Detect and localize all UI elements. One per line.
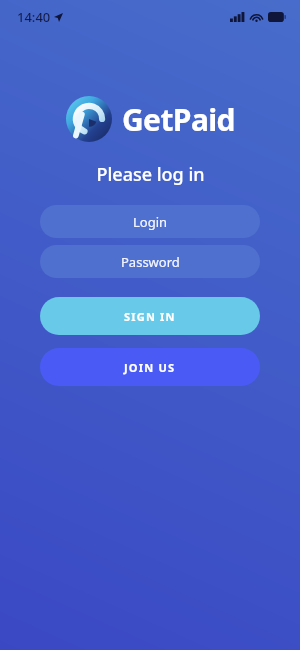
other: GetPaid logo — [66, 96, 112, 142]
button[interactable]: JOIN US — [40, 348, 260, 386]
staticText: Password — [121, 253, 180, 271]
staticText: GetPaid — [122, 99, 235, 140]
button[interactable]: SIGN IN — [40, 297, 260, 335]
staticText: Login — [133, 213, 168, 231]
staticText: 14:40 — [17, 8, 51, 26]
button[interactable]: Login — [40, 205, 260, 238]
staticText: SIGN IN — [124, 309, 176, 324]
staticText: JOIN US — [124, 360, 176, 375]
button[interactable]: Password — [40, 245, 260, 278]
staticText: Please log in — [96, 162, 205, 187]
